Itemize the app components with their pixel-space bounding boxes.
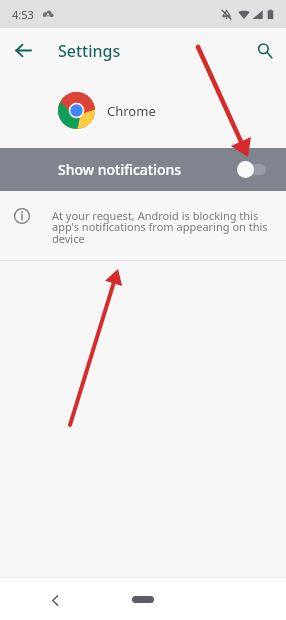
staticText: At your request, Android is blocking thi… xyxy=(52,208,267,247)
staticText: Settings xyxy=(58,40,121,62)
staticText: 4:53 xyxy=(12,7,34,22)
staticText: Chrome xyxy=(107,102,156,120)
button[interactable]: Back xyxy=(37,582,73,618)
button[interactable]: Home xyxy=(123,586,163,612)
button[interactable]: Show notifications xyxy=(0,148,286,191)
button[interactable]: Back xyxy=(0,28,46,73)
staticText: Show notifications xyxy=(58,160,182,179)
button[interactable]: Search xyxy=(244,28,286,73)
button[interactable]: Show notifications toggle xyxy=(237,148,285,191)
button[interactable]: Chrome xyxy=(0,73,286,148)
